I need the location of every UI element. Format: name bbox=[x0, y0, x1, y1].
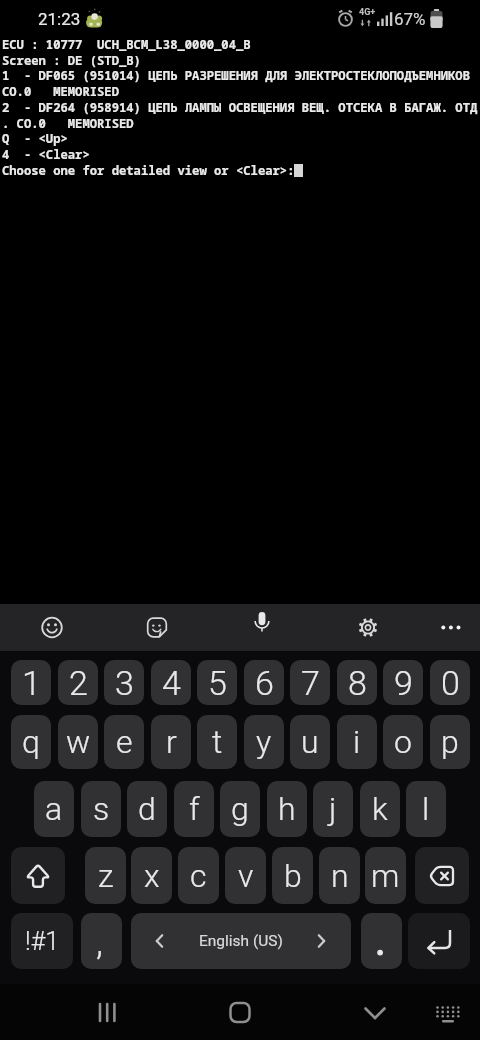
button[interactable] bbox=[218, 990, 262, 1034]
button[interactable]: n bbox=[319, 847, 360, 904]
staticText: 21:23 bbox=[38, 9, 81, 29]
button[interactable]: f bbox=[174, 781, 214, 837]
button[interactable]: 4 bbox=[151, 660, 191, 705]
button[interactable] bbox=[408, 913, 470, 969]
button[interactable] bbox=[353, 990, 397, 1034]
staticText: 4 - <Clear> bbox=[2, 146, 90, 163]
button[interactable]: 0 bbox=[430, 660, 470, 705]
staticText: Choose one for detailed view or <Clear>: bbox=[2, 162, 295, 179]
staticText: p bbox=[441, 723, 459, 761]
button[interactable]: 2 bbox=[58, 660, 98, 705]
button[interactable]: 9 bbox=[383, 660, 423, 705]
staticText: u bbox=[301, 723, 319, 761]
staticText: 9 bbox=[394, 663, 413, 703]
staticText: i bbox=[353, 723, 361, 761]
button[interactable]: , bbox=[81, 913, 122, 969]
button[interactable] bbox=[415, 847, 469, 904]
staticText: 4 bbox=[162, 663, 181, 703]
button[interactable]: 5 bbox=[197, 660, 237, 705]
staticText: h bbox=[278, 790, 296, 828]
button[interactable] bbox=[240, 603, 284, 647]
button[interactable]: q bbox=[11, 715, 51, 769]
staticText: c bbox=[190, 857, 207, 895]
button[interactable]: x bbox=[131, 847, 172, 904]
button[interactable]: a bbox=[34, 781, 74, 837]
button[interactable]: s bbox=[81, 781, 121, 837]
staticText: Q - <Up> bbox=[2, 130, 68, 147]
staticText: . CO.0 MEMORISED bbox=[2, 115, 134, 132]
staticText: 0 bbox=[441, 663, 460, 703]
button[interactable] bbox=[135, 605, 179, 649]
staticText: 2 - DF264 (958914) ЦЕПЬ ЛАМПЫ ОСВЕЩЕНИЯ … bbox=[2, 99, 478, 116]
button[interactable]: l bbox=[406, 781, 446, 837]
staticText: a bbox=[45, 790, 63, 828]
button[interactable]: v bbox=[225, 847, 266, 904]
staticText: !#1 bbox=[25, 927, 60, 956]
button[interactable]: 8 bbox=[337, 660, 377, 705]
staticText: CO.0 MEMORISED bbox=[2, 83, 119, 100]
staticText: 1 - DF065 (951014) ЦЕПЬ РАЗРЕШЕНИЯ ДЛЯ Э… bbox=[2, 67, 470, 84]
staticText: 4G+ bbox=[359, 7, 376, 18]
staticText: j bbox=[329, 790, 337, 828]
button[interactable]: 1 bbox=[11, 660, 51, 705]
button[interactable] bbox=[361, 913, 402, 969]
staticText: v bbox=[238, 857, 254, 895]
staticText: e bbox=[116, 723, 133, 761]
button[interactable] bbox=[11, 847, 65, 904]
staticText: English (US) bbox=[199, 932, 283, 950]
button[interactable]: u bbox=[290, 715, 330, 769]
staticText: z bbox=[98, 857, 114, 895]
button[interactable] bbox=[30, 605, 74, 649]
staticText: w bbox=[66, 723, 91, 761]
staticText: s bbox=[93, 790, 110, 828]
button[interactable]: !#1 bbox=[11, 913, 73, 969]
staticText: r bbox=[166, 723, 177, 761]
button[interactable]: c bbox=[178, 847, 219, 904]
button[interactable]: p bbox=[430, 715, 470, 769]
staticText: q bbox=[22, 723, 40, 761]
button[interactable]: w bbox=[58, 715, 98, 769]
staticText: t bbox=[212, 723, 223, 761]
staticText: f bbox=[189, 790, 200, 828]
button[interactable]: i bbox=[337, 715, 377, 769]
staticText: 3 bbox=[115, 663, 134, 703]
staticText: 6 bbox=[255, 663, 274, 703]
button[interactable]: 3 bbox=[104, 660, 144, 705]
staticText: ECU : 10777 UCH_BCM_L38_0000_04_B bbox=[2, 36, 251, 53]
button[interactable] bbox=[85, 990, 129, 1034]
staticText: 8 bbox=[348, 663, 367, 703]
button[interactable]: m bbox=[365, 847, 406, 904]
staticText: Screen : DE (STD_B) bbox=[2, 52, 141, 69]
button[interactable]: j bbox=[313, 781, 353, 837]
staticText: d bbox=[138, 790, 156, 828]
staticText: k bbox=[372, 790, 388, 828]
staticText: x bbox=[144, 857, 160, 895]
button[interactable]: 6 bbox=[244, 660, 284, 705]
button[interactable]: g bbox=[220, 781, 260, 837]
staticText: y bbox=[256, 723, 272, 761]
staticText: m bbox=[371, 857, 400, 895]
staticText: o bbox=[394, 723, 412, 761]
button[interactable]: y bbox=[244, 715, 284, 769]
staticText: 2 bbox=[69, 663, 88, 703]
button[interactable]: o bbox=[383, 715, 423, 769]
staticText: l bbox=[422, 790, 430, 828]
button[interactable] bbox=[428, 605, 472, 649]
button[interactable]: d bbox=[127, 781, 167, 837]
staticText: b bbox=[284, 857, 302, 895]
button[interactable] bbox=[346, 605, 390, 649]
button[interactable]: English (US) bbox=[131, 913, 351, 969]
button[interactable]: b bbox=[272, 847, 313, 904]
staticText: n bbox=[331, 857, 349, 895]
button[interactable] bbox=[432, 995, 466, 1029]
staticText: , bbox=[96, 921, 103, 963]
button[interactable]: h bbox=[267, 781, 307, 837]
staticText: 1 bbox=[22, 663, 41, 703]
button[interactable]: e bbox=[104, 715, 144, 769]
button[interactable]: 7 bbox=[290, 660, 330, 705]
button[interactable]: z bbox=[85, 847, 126, 904]
button[interactable]: k bbox=[360, 781, 400, 837]
button[interactable]: r bbox=[151, 715, 191, 769]
button[interactable]: t bbox=[197, 715, 237, 769]
staticText: 67% bbox=[394, 9, 426, 29]
